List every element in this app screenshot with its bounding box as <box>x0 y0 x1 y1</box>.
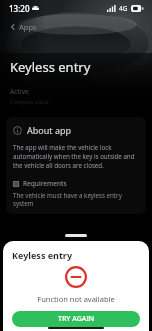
staticText: The app will make the vehicle lock autom… <box>13 143 139 170</box>
staticText: Keyless entry <box>12 249 73 261</box>
staticText: Apps <box>19 22 37 32</box>
staticText: 13:20 <box>9 3 30 14</box>
button[interactable]: About app <box>6 117 146 214</box>
staticText: The vehicle must have a keyless entry sy… <box>13 191 139 207</box>
staticText: Requirements <box>23 179 67 188</box>
staticText: Keyless entry <box>10 58 91 76</box>
staticText: Function not available <box>12 294 140 304</box>
button[interactable]: Apps <box>5 19 41 35</box>
staticText: About app <box>27 124 72 136</box>
staticText: 4G <box>119 4 128 13</box>
staticText: Active <box>10 87 29 96</box>
other: Function not available <box>65 266 87 288</box>
staticText: Compare value <box>10 98 49 105</box>
button[interactable]: TRY AGAIN <box>12 311 140 327</box>
staticText: TRY AGAIN <box>58 314 95 324</box>
